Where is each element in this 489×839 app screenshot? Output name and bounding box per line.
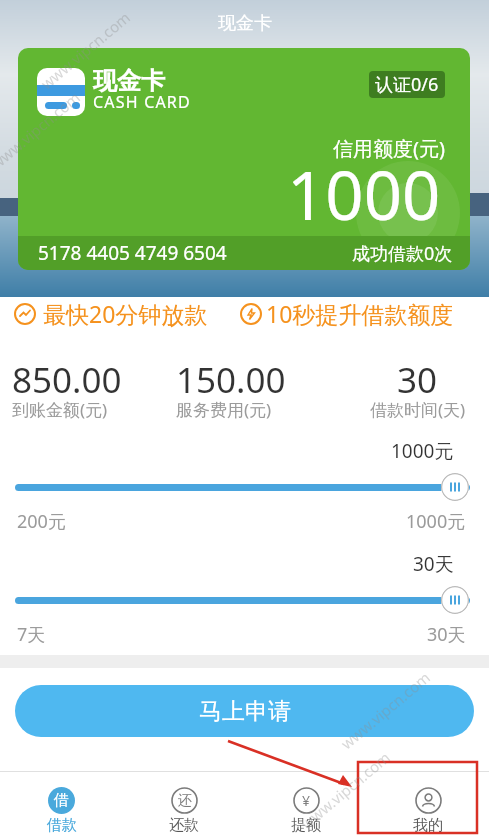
staticText: 借款 [47,816,77,835]
staticText: 我的 [413,816,443,835]
button[interactable]: 借 [0,772,123,839]
staticText: 服务费用(元) [176,398,272,421]
staticText: www.vipcn.com [297,747,394,833]
staticText: 还款 [169,816,199,835]
button[interactable]: ¥ [245,772,367,839]
staticText: 成功借款0次 [352,241,453,266]
staticText: ¥ [302,791,311,810]
staticText: 借 [54,791,69,810]
button[interactable]: 马上申请 [15,685,474,737]
staticText: 认证0/6 [375,72,439,97]
staticText: www.vipcn.com [37,7,134,93]
staticText: 1000元 [406,509,466,534]
staticText: www.vipcn.com [337,667,434,753]
staticText: 200元 [17,509,66,534]
staticText: 10秒提升借款额度 [266,298,454,329]
staticText: 5178 4405 4749 6504 [38,240,227,266]
staticText: 最快20分钟放款 [43,298,208,329]
staticText: 850.00 [12,356,122,404]
staticText: www.vipcn.com [0,87,84,173]
staticText: 7天 [17,622,46,647]
staticText: 30 [397,356,438,404]
staticText: CASH CARD [93,91,191,113]
staticText: 现金卡 [93,66,165,96]
staticText: 1000元 [391,438,454,464]
staticText: 信用额度(元) [333,135,445,162]
staticText: 马上申请 [199,697,291,726]
staticText: 借款时间(天) [370,398,466,421]
staticText: 提额 [291,816,321,835]
button[interactable]: 还 [123,772,245,839]
staticText: 还 [178,792,192,810]
staticText: 1000 [287,148,441,239]
staticText: 30天 [413,551,454,577]
staticText: 现金卡 [218,12,272,35]
staticText: 150.00 [176,356,286,404]
staticText: 到账金额(元) [12,398,108,421]
button[interactable]: 我的 [367,772,489,839]
staticText: 30天 [427,622,466,647]
